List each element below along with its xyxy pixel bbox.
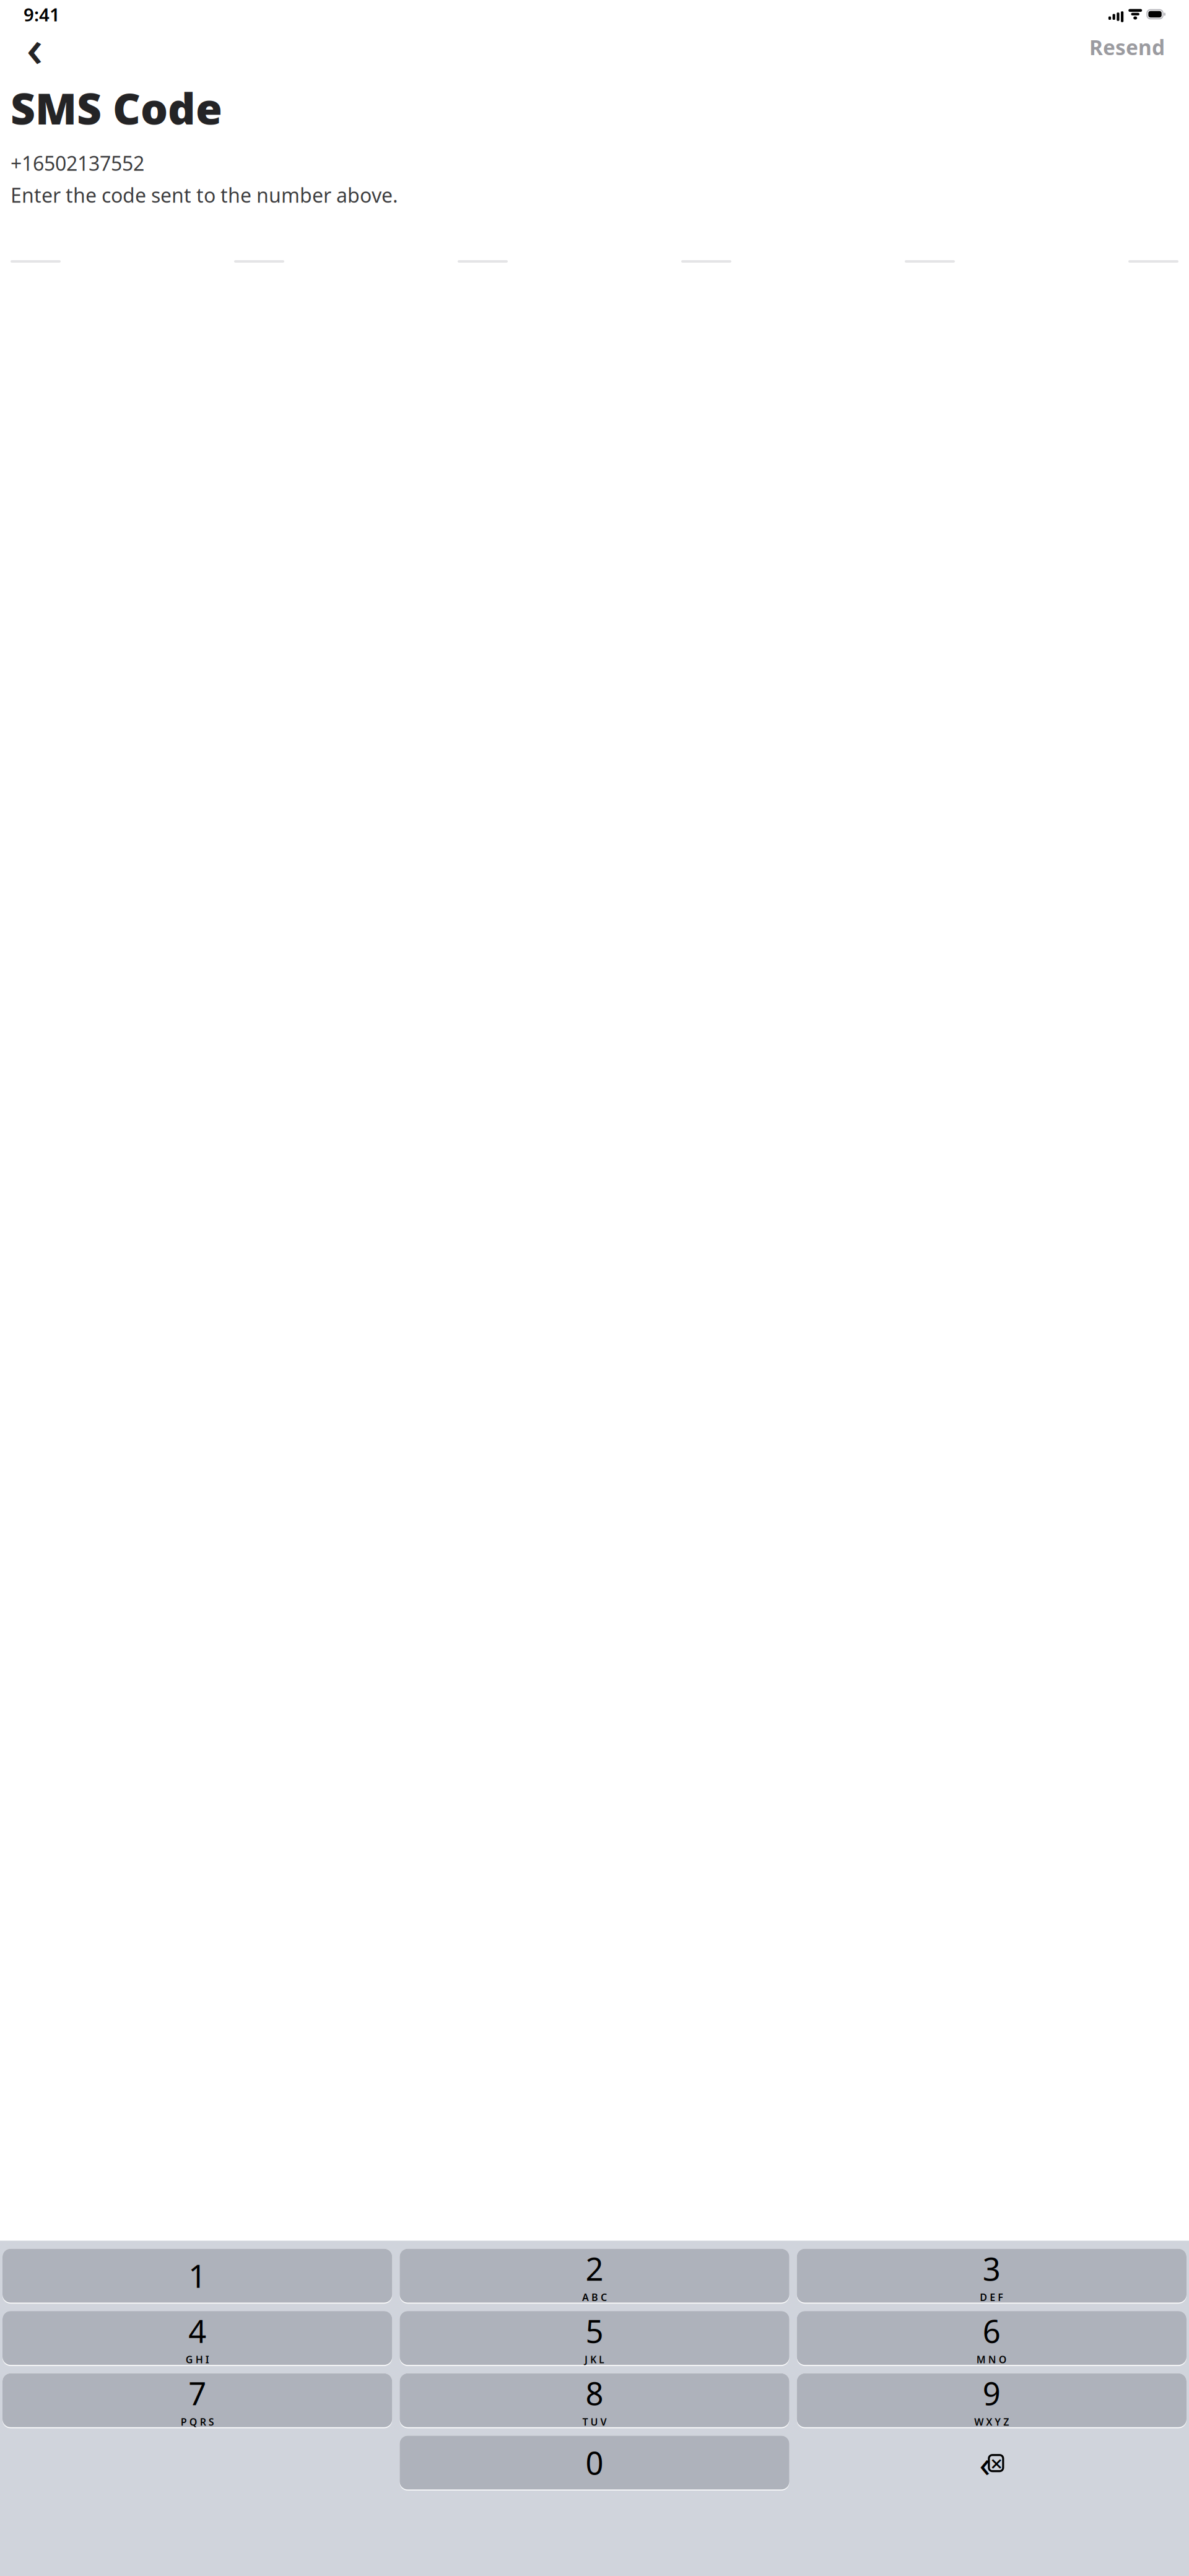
staticText: 0	[586, 2442, 603, 2483]
staticText: ‹	[26, 13, 43, 81]
staticText: W X Y Z	[974, 2415, 1009, 2428]
staticText: P Q R S	[181, 2415, 214, 2428]
staticText: 2	[586, 2248, 603, 2289]
staticText: M N O	[976, 2353, 1007, 2366]
button[interactable]: Resend	[1089, 32, 1165, 62]
button[interactable]: Back	[20, 32, 50, 62]
staticText: Resend	[1089, 33, 1165, 61]
staticText: 8	[586, 2372, 603, 2414]
staticText: 5	[586, 2310, 603, 2352]
button[interactable]: 2	[400, 2249, 789, 2304]
staticText: 4	[188, 2310, 206, 2352]
staticText: ×	[990, 2449, 1003, 2477]
staticText: G H I	[186, 2353, 209, 2366]
button[interactable]: 3	[797, 2249, 1187, 2304]
button[interactable]: 1	[2, 2249, 392, 2304]
button[interactable]: 6	[797, 2311, 1187, 2366]
staticText: 7	[188, 2372, 206, 2414]
staticText: 1	[188, 2255, 206, 2297]
staticText: A B C	[582, 2291, 607, 2304]
button[interactable]: 0	[400, 2436, 789, 2491]
button[interactable]: 7	[2, 2373, 392, 2428]
button[interactable]: 5	[400, 2311, 789, 2366]
button[interactable]: Delete	[797, 2436, 1187, 2490]
button[interactable]: 8	[400, 2373, 789, 2428]
staticText: ‹	[979, 2439, 990, 2487]
staticText: J K L	[585, 2353, 604, 2366]
staticText: 9:41	[24, 2, 60, 26]
staticText: D E F	[980, 2291, 1003, 2304]
staticText: 6	[983, 2310, 1001, 2352]
staticText: 3	[983, 2248, 1001, 2289]
staticText: +16502137552	[11, 150, 144, 176]
staticText: SMS Code	[11, 79, 222, 136]
staticText: Enter the code sent to the number above.	[11, 182, 398, 208]
button[interactable]: 4	[2, 2311, 392, 2366]
button[interactable]: 9	[797, 2373, 1187, 2428]
staticText: 9	[983, 2372, 1001, 2414]
staticText: T U V	[582, 2415, 607, 2428]
